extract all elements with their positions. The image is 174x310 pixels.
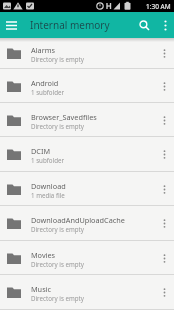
staticText: 1 subfolder [31,88,65,96]
button[interactable] [156,215,172,231]
staticText: Download [31,181,66,191]
button[interactable] [156,146,172,162]
button[interactable] [156,16,174,34]
staticText: Alarms [31,45,55,55]
button[interactable] [156,45,172,61]
staticText: Movies [31,250,56,260]
staticText: Browser_Savedfiles [31,112,97,122]
button[interactable] [156,78,172,94]
staticText: Directory is empty [31,122,84,130]
button[interactable] [156,250,172,266]
staticText: Android [31,78,59,88]
staticText: 1 subfolder [31,156,65,164]
button[interactable] [156,181,172,197]
staticText: DownloadAndUploadCache [31,215,125,225]
button[interactable] [2,16,20,34]
button[interactable] [156,112,172,128]
staticText: Directory is empty [31,225,84,233]
staticText: 1 media file [31,191,65,199]
button[interactable]: Music [0,275,174,310]
staticText: Music [31,284,52,294]
button[interactable]: Download [0,172,174,206]
staticText: Directory is empty [31,55,84,63]
button[interactable]: Browser_Savedfiles [0,103,174,137]
button[interactable]: Movies [0,241,174,275]
staticText: Directory is empty [31,260,84,268]
button[interactable]: Alarms [0,38,174,69]
staticText: Internal memory [30,18,110,32]
staticText: 1:30 AM [146,2,171,11]
button[interactable]: Android [0,69,174,103]
staticText: Directory is empty [31,294,84,302]
staticText: DCIM [31,146,51,156]
button[interactable]: DCIM [0,137,174,172]
button[interactable] [132,13,156,37]
button[interactable] [156,284,172,300]
button[interactable]: DownloadAndUploadCache [0,206,174,241]
